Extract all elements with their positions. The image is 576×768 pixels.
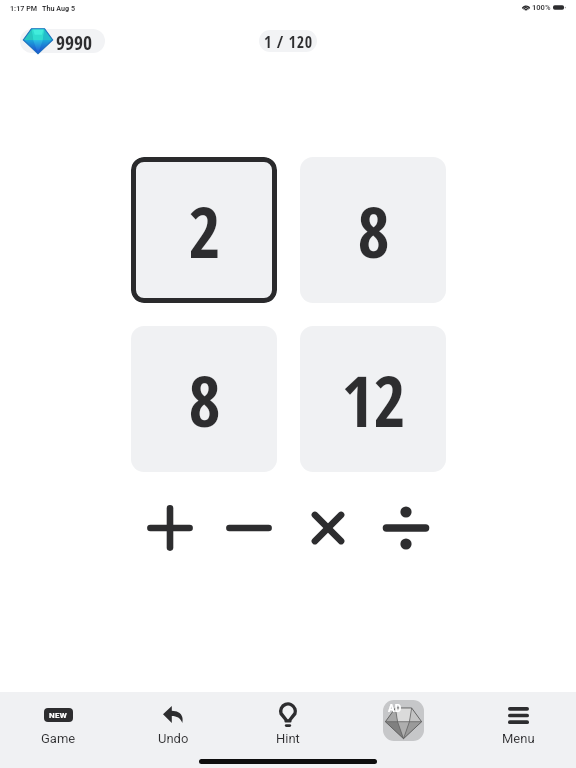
button[interactable]: 12 xyxy=(300,326,446,472)
staticText: 1:17 PM xyxy=(10,4,38,12)
button[interactable]: Multiply xyxy=(298,498,358,558)
staticText: 9990 xyxy=(56,29,93,53)
button[interactable]: Watch ad for gems xyxy=(383,700,424,741)
button[interactable]: 8 xyxy=(131,326,277,472)
button[interactable]: Gems: 9990 xyxy=(20,29,105,53)
staticText: Undo xyxy=(158,731,189,746)
button[interactable]: Plus xyxy=(140,498,200,558)
staticText: 2 xyxy=(188,184,221,279)
button[interactable]: Divide xyxy=(376,498,436,558)
staticText: 12 xyxy=(341,353,406,448)
staticText: Menu xyxy=(502,731,535,746)
button[interactable]: NEW xyxy=(15,697,101,747)
button[interactable]: Undo xyxy=(130,697,216,747)
staticText: 8 xyxy=(357,184,390,279)
button[interactable]: 8 xyxy=(300,157,446,303)
button[interactable]: 2 xyxy=(131,157,277,303)
staticText: 8 xyxy=(188,353,221,448)
staticText: AD xyxy=(388,703,402,715)
button[interactable]: Minus xyxy=(219,498,279,558)
button[interactable]: 1 / 120 xyxy=(259,30,317,52)
staticText: 100% xyxy=(532,3,551,12)
staticText: 1 / 120 xyxy=(264,31,313,52)
button[interactable]: Menu xyxy=(475,697,561,747)
staticText: Thu Aug 5 xyxy=(42,4,76,12)
staticText: Hint xyxy=(276,731,300,746)
staticText: NEW xyxy=(49,711,68,720)
staticText: Game xyxy=(41,731,76,746)
button[interactable]: Hint xyxy=(245,697,331,747)
